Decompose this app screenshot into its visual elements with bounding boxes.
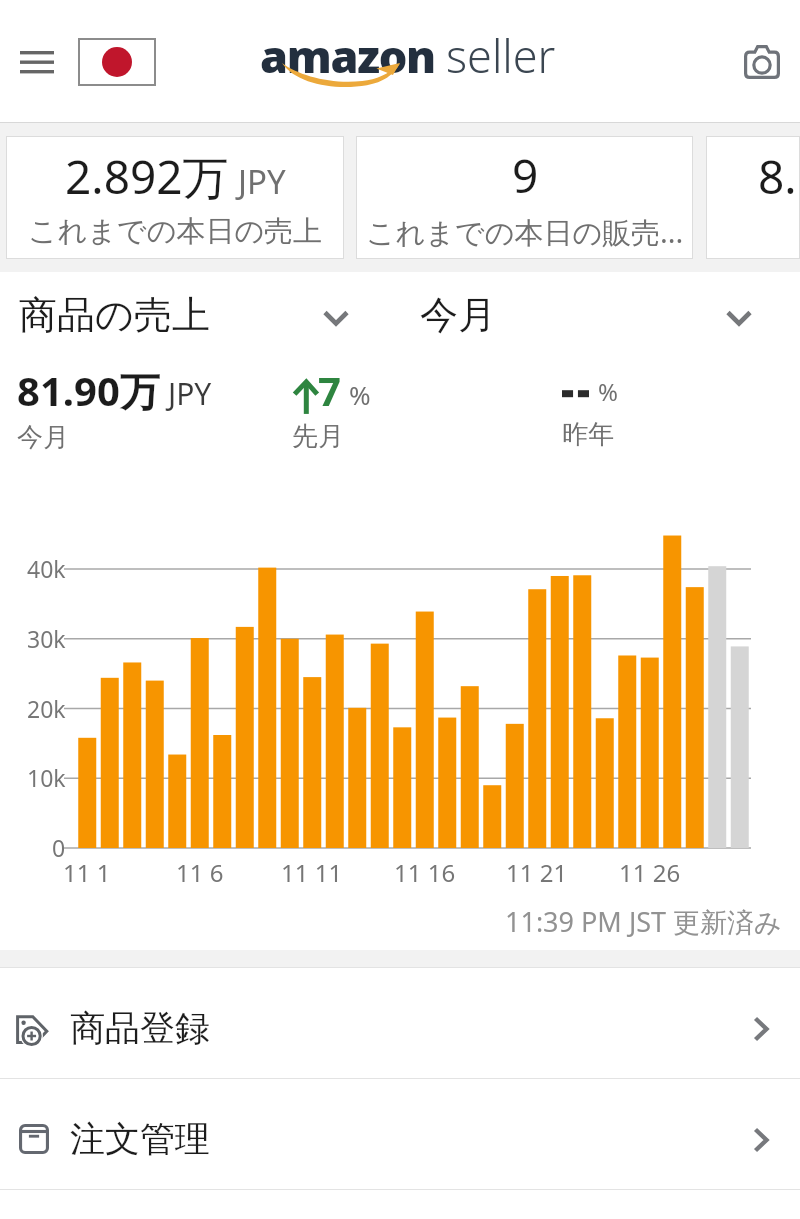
staticText: 商品登録 (70, 1006, 210, 1050)
staticText: 今月 (17, 421, 69, 454)
staticText: % (349, 377, 371, 412)
staticText: 昨年 (562, 418, 614, 451)
staticText: これまでの本日の販売... (366, 212, 684, 252)
staticText: 20k (27, 693, 66, 724)
staticText: JPY (168, 373, 212, 414)
staticText: 10k (27, 762, 66, 793)
button[interactable]: 注文管理 (0, 1079, 800, 1189)
staticText: 今月 (420, 291, 496, 339)
staticText: 先月 (292, 420, 344, 453)
staticText: 11 1 (63, 856, 111, 889)
button[interactable]: 商品の売上 (0, 272, 396, 358)
staticText: 11 16 (394, 856, 456, 889)
button[interactable]: 9 (356, 136, 693, 259)
staticText: これまでの本日の売上 (28, 213, 323, 250)
button[interactable]: Menu (12, 37, 62, 87)
button[interactable]: 2.892万 (6, 136, 344, 259)
staticText: 11 6 (176, 856, 224, 889)
button[interactable]: Japan marketplace (78, 38, 156, 86)
staticText: 7 (318, 363, 341, 417)
staticText: 8.892万 (758, 145, 800, 208)
staticText: amazon (260, 25, 435, 86)
staticText: 11 21 (506, 856, 568, 889)
staticText: 11:39 PM JST 更新済み (505, 903, 782, 940)
button[interactable]: 商品登録 (0, 968, 800, 1078)
staticText: 30k (27, 623, 66, 654)
staticText: 11 26 (619, 856, 681, 889)
staticText: 2.892万 (65, 145, 229, 208)
staticText: 0 (52, 832, 66, 863)
button[interactable]: 8.892万 (706, 136, 800, 259)
staticText: 81.90万 (17, 363, 160, 418)
staticText: 注文管理 (70, 1117, 210, 1161)
staticText: 40k (27, 553, 66, 584)
button[interactable]: 今月 (396, 272, 800, 358)
staticText: 11 11 (281, 856, 343, 889)
staticText: % (598, 375, 618, 408)
staticText: 商品の売上 (19, 291, 210, 339)
staticText: seller (446, 25, 556, 86)
staticText: JPY (238, 159, 286, 204)
staticText: 9 (512, 144, 539, 207)
button[interactable]: Camera scan (734, 34, 790, 90)
